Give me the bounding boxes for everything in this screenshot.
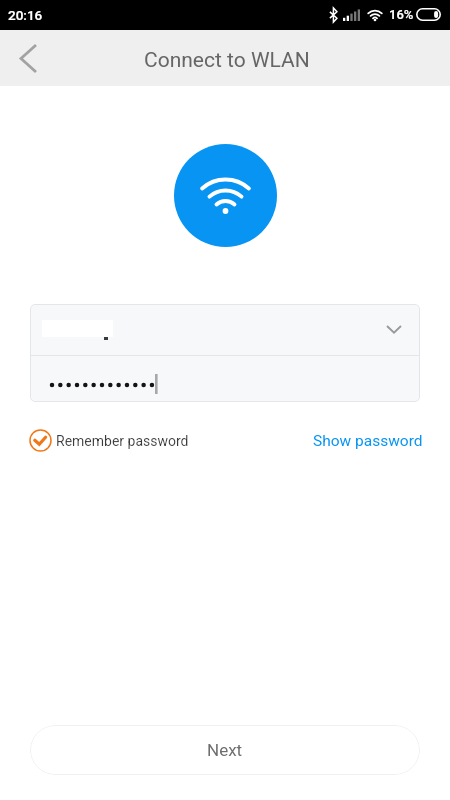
button[interactable] bbox=[30, 356, 420, 402]
staticText: 20:16 bbox=[8, 7, 43, 23]
staticText: Remember password bbox=[56, 433, 189, 449]
staticText: Connect to WLAN bbox=[144, 48, 310, 73]
button[interactable]: Next bbox=[30, 725, 420, 775]
button[interactable]: Show password bbox=[313, 432, 423, 450]
button[interactable] bbox=[30, 304, 420, 355]
staticText: Show password bbox=[313, 432, 423, 450]
button[interactable]: Back bbox=[0, 30, 56, 86]
staticText: 16% bbox=[389, 7, 414, 22]
button[interactable]: Remember password bbox=[29, 429, 189, 452]
staticText: Next bbox=[207, 740, 243, 760]
